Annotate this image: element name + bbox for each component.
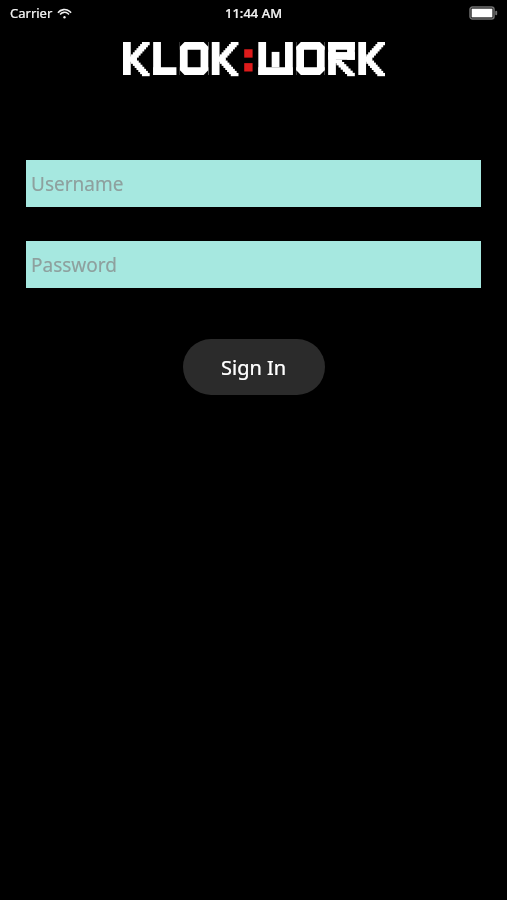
staticText: Carrier [10,4,53,22]
button[interactable]: Sign In [183,339,325,395]
other: Battery [470,7,497,19]
staticText: Sign In [221,354,287,381]
staticText: Password [31,252,117,278]
other: Klokwork logo [123,42,385,75]
staticText: Username [31,171,124,197]
button[interactable]: Password [26,241,481,288]
staticText: 11:44 AM [225,4,283,22]
button[interactable]: Username [26,160,481,207]
